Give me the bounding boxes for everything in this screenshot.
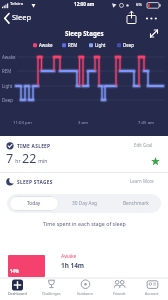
button[interactable]: Dashboard	[0, 279, 34, 300]
staticText: Challenges	[42, 291, 61, 296]
staticText: Deep	[2, 97, 13, 103]
staticText: Sleep Stages	[65, 29, 104, 37]
button[interactable]	[124, 10, 140, 26]
staticText: Awake	[39, 42, 53, 48]
staticText: TIME ASLEEP	[17, 143, 51, 150]
button[interactable]: Today	[9, 196, 59, 211]
staticText: Light	[2, 83, 13, 89]
staticText: 3 am	[78, 119, 89, 125]
button[interactable]: Challenges	[34, 279, 68, 300]
staticText: 6%	[136, 2, 142, 8]
staticText: Learn More	[130, 178, 154, 184]
staticText: 7	[6, 150, 14, 167]
staticText: Edit Goal	[134, 142, 153, 148]
staticText: Light	[95, 42, 106, 48]
staticText: Time spent in each stage of sleep	[43, 220, 126, 227]
button[interactable]	[143, 10, 161, 26]
staticText: Awake	[2, 54, 16, 60]
button[interactable]: 30 Day Avg	[59, 194, 111, 213]
button[interactable]: Sleep	[0, 11, 60, 26]
staticText: 1h 14m	[61, 261, 85, 270]
button[interactable]: Learn More	[126, 176, 164, 188]
staticText: SLEEP STAGES	[17, 179, 53, 186]
staticText: min	[37, 158, 48, 165]
staticText: Telstra	[10, 1, 23, 7]
staticText: 12:00 am	[74, 1, 95, 7]
staticText: Dashboard	[8, 291, 27, 296]
staticText: REM	[2, 68, 12, 74]
staticText: REM	[68, 42, 78, 48]
staticText: 11:03 pm	[13, 119, 32, 125]
staticText: Account	[145, 291, 159, 296]
button[interactable]: Account	[136, 279, 168, 300]
staticText: Today	[27, 200, 41, 207]
button[interactable]	[146, 27, 162, 41]
staticText: hr	[14, 158, 22, 165]
staticText: 22	[22, 150, 37, 167]
staticText: Benchmark	[123, 200, 149, 207]
button[interactable]: Edit Goal	[130, 140, 164, 152]
button[interactable]: Guidance	[68, 279, 102, 300]
staticText: Friends	[113, 291, 126, 296]
staticText: 14%	[10, 268, 19, 274]
button[interactable]: Benchmark	[111, 194, 161, 213]
staticText: 7:45 am	[138, 119, 155, 125]
staticText: Guidance	[77, 291, 93, 296]
button[interactable]: Friends	[102, 279, 136, 300]
staticText: Awake	[61, 253, 77, 260]
staticText: Deep	[123, 42, 134, 48]
staticText: Sleep	[12, 12, 32, 22]
staticText: 30 Day Avg	[72, 200, 98, 207]
